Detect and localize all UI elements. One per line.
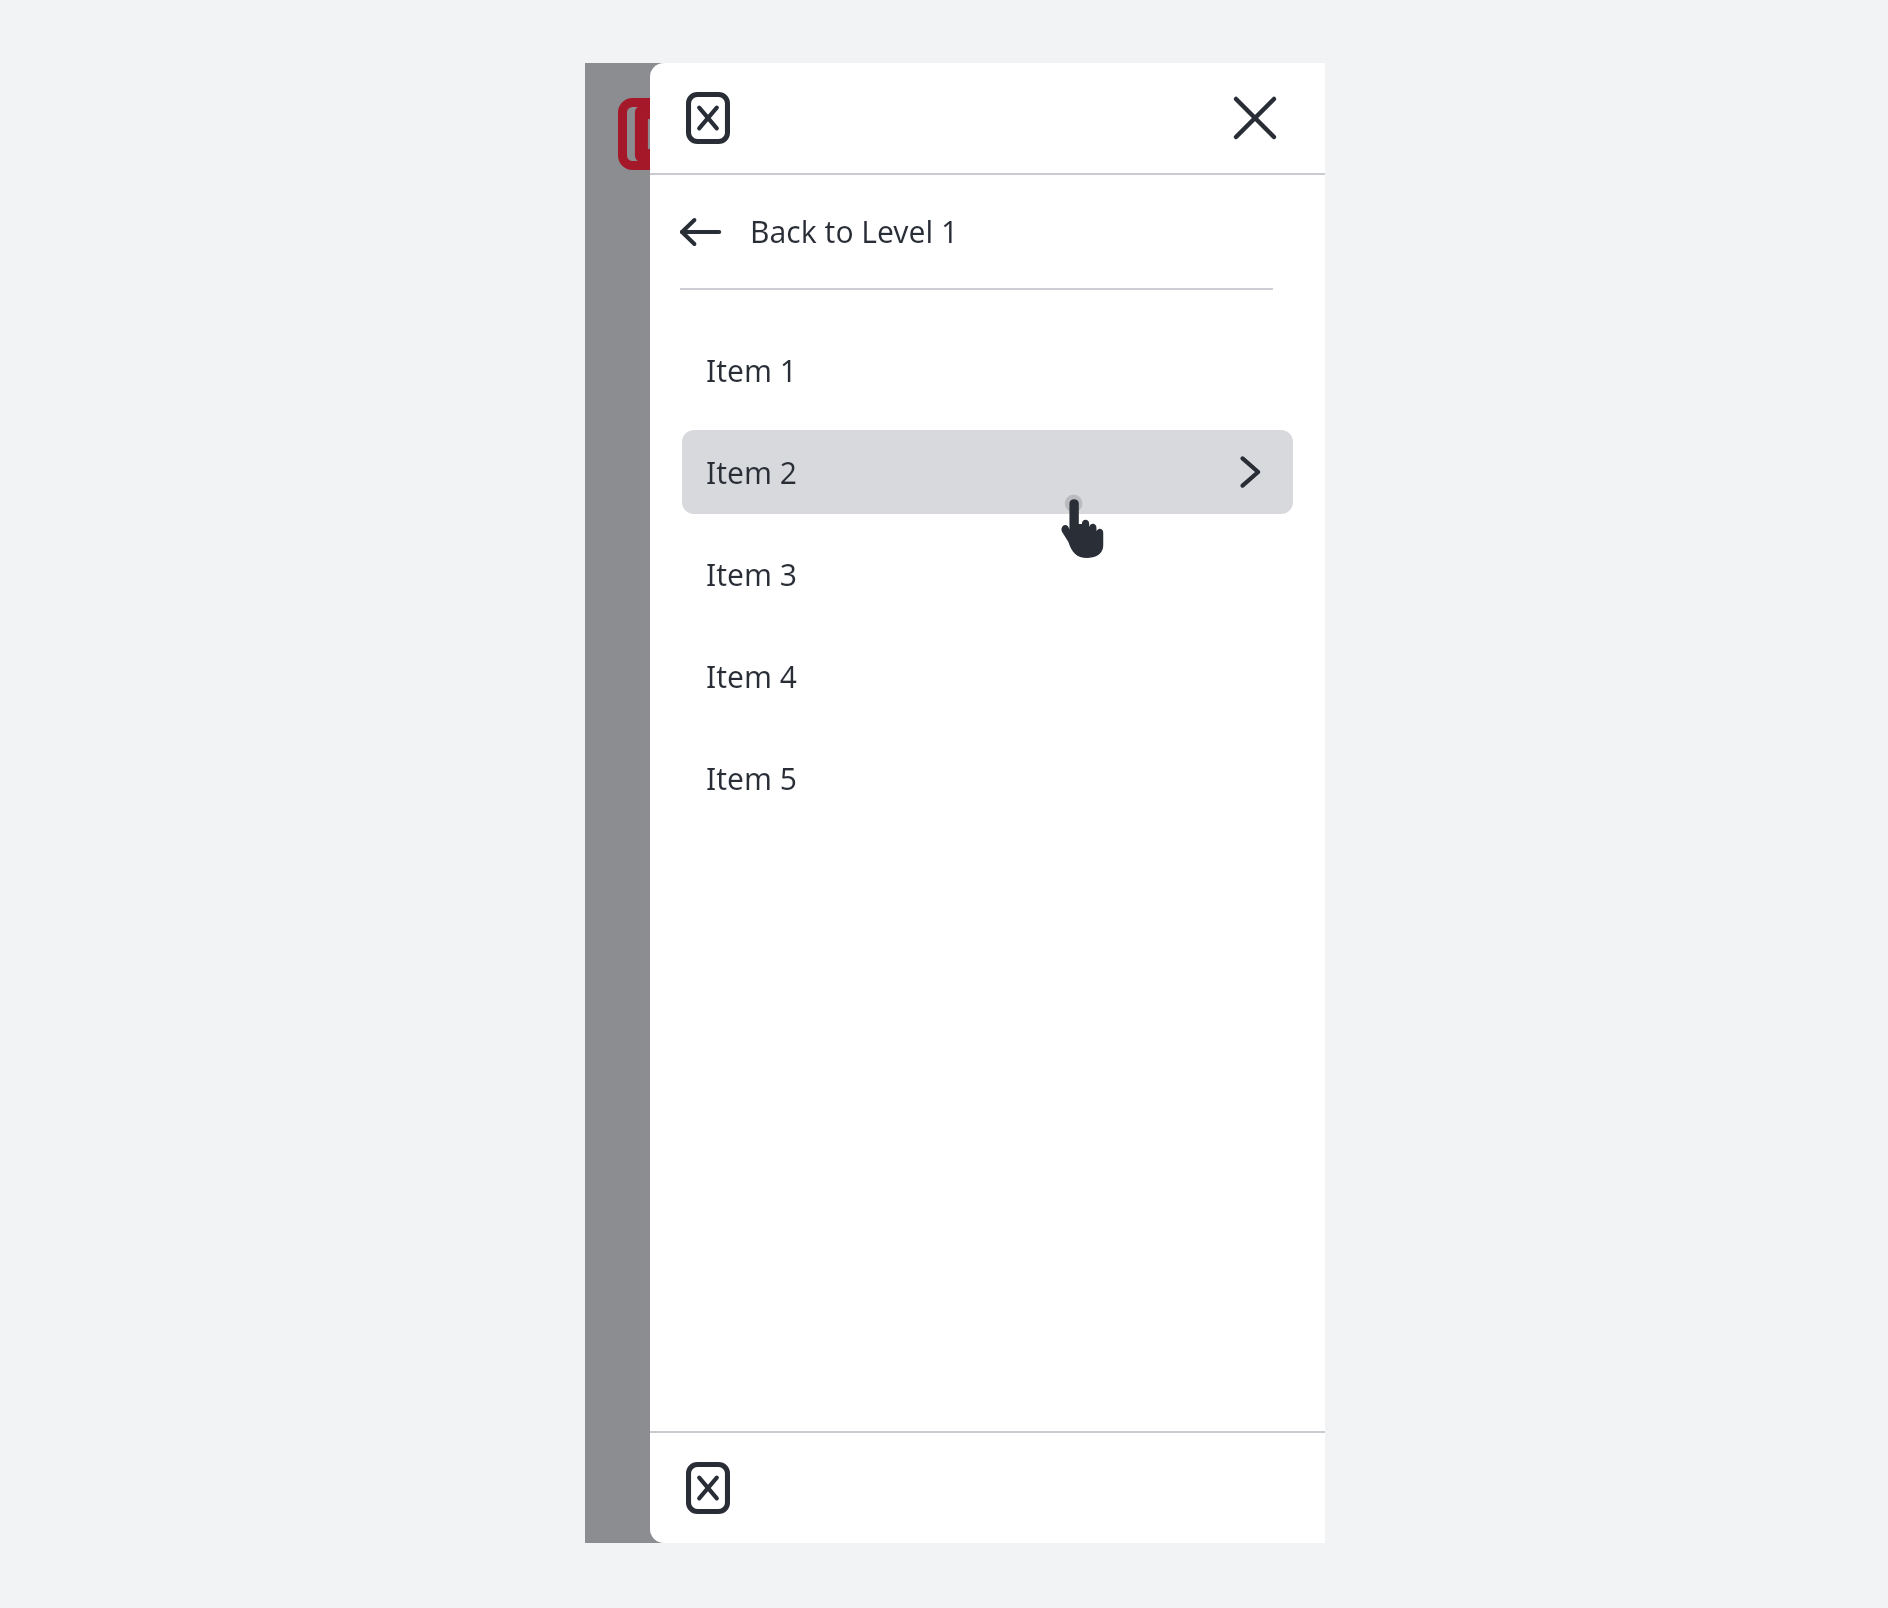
- staticText: Item 1: [706, 350, 797, 391]
- staticText: Item 2: [706, 452, 797, 493]
- staticText: Item 5: [706, 758, 797, 799]
- button[interactable]: Item 3: [682, 532, 1293, 616]
- button[interactable]: Item 4: [682, 634, 1293, 718]
- staticText: Item 3: [706, 554, 797, 595]
- staticText: Back to Level 1: [750, 211, 959, 252]
- button[interactable]: Close: [1227, 90, 1283, 146]
- staticText: Item 4: [706, 656, 797, 697]
- button[interactable]: Item 2: [682, 430, 1293, 514]
- button[interactable]: Close overlay: [680, 1460, 736, 1516]
- button[interactable]: Back to Level 1: [650, 175, 1325, 288]
- button[interactable]: Close overlay: [680, 90, 736, 146]
- button[interactable]: Item 5: [682, 736, 1293, 820]
- button[interactable]: Item 1: [682, 328, 1293, 412]
